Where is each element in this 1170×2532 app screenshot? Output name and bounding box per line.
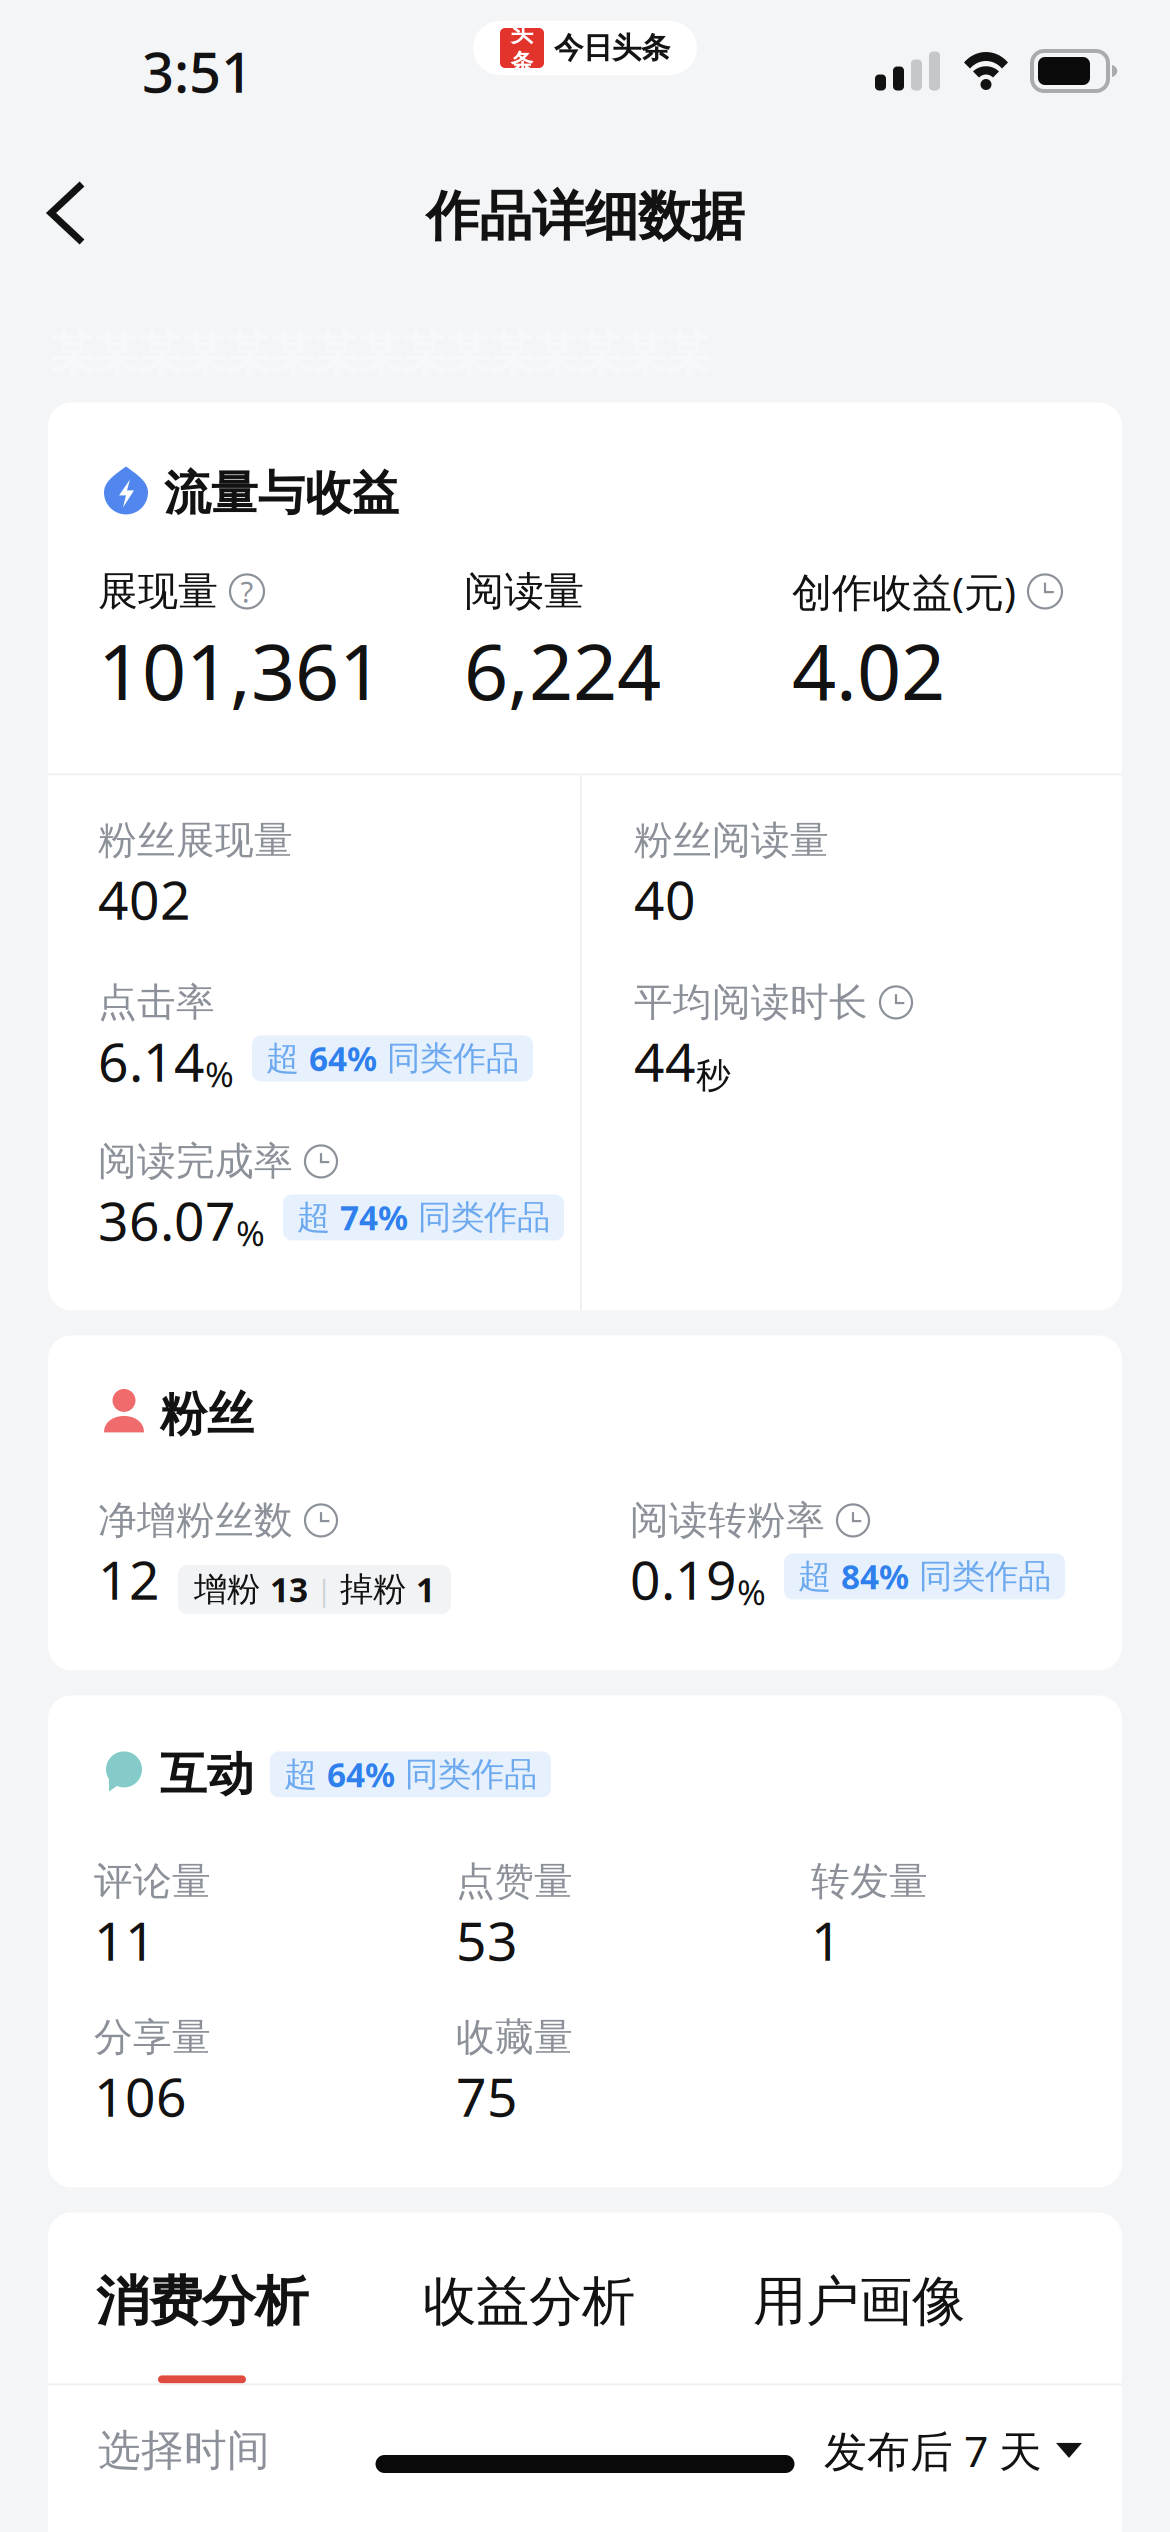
staticText: % xyxy=(236,1209,265,1256)
staticText: 阅读完成率 xyxy=(98,1137,293,1186)
staticText: 53 xyxy=(456,1904,518,1976)
staticText: 超 xyxy=(266,1037,309,1079)
staticText: 74% xyxy=(340,1195,408,1240)
staticText: 40 xyxy=(634,863,696,935)
staticText: 作品详细数据 xyxy=(426,183,744,250)
staticText: 64% xyxy=(327,1752,395,1797)
staticText: 4.02 xyxy=(792,617,945,723)
button[interactable]: 选择时间 xyxy=(48,2385,1122,2515)
staticText: 6.14 xyxy=(98,1025,205,1097)
staticText: 101,361 xyxy=(98,617,383,723)
staticText: 1 xyxy=(416,1567,435,1612)
staticText: 流量与收益 xyxy=(164,464,399,523)
button[interactable]: 收益分析 xyxy=(423,2273,635,2383)
button[interactable]: Back xyxy=(0,129,118,265)
staticText: 分享量 xyxy=(94,2013,211,2062)
staticText: 同类作品 xyxy=(408,1196,550,1238)
staticText: 收益分析 xyxy=(423,2268,635,2335)
staticText: % xyxy=(737,1568,766,1615)
staticText: 平均阅读时长 xyxy=(634,978,868,1027)
staticText: 同类作品 xyxy=(377,1037,519,1079)
staticText: 阅读量 xyxy=(464,566,584,617)
staticText: 粉丝阅读量 xyxy=(634,816,829,865)
staticText: 转发量 xyxy=(811,1857,928,1906)
staticText: 点击率 xyxy=(98,978,215,1027)
staticText: 402 xyxy=(98,863,191,935)
staticText: 收藏量 xyxy=(456,2013,573,2062)
staticText: 36.07 xyxy=(98,1184,236,1256)
staticText: 掉粉 xyxy=(340,1568,416,1610)
staticText: 今日头条 xyxy=(554,29,670,66)
staticText: 秒 xyxy=(696,1054,731,1097)
staticText: 评论量 xyxy=(94,1857,211,1906)
staticText: 3:51 xyxy=(142,33,253,109)
staticText: | xyxy=(308,1569,340,1609)
staticText: 13 xyxy=(270,1567,308,1612)
staticText: 11 xyxy=(94,1904,156,1976)
staticText: 超 xyxy=(798,1555,841,1597)
staticText: % xyxy=(205,1050,234,1097)
staticText: 用户画像 xyxy=(753,2268,965,2335)
staticText: 75 xyxy=(456,2060,518,2132)
staticText: 64% xyxy=(309,1036,377,1081)
staticText: 6,224 xyxy=(464,617,661,723)
staticText: 点赞量 xyxy=(456,1857,573,1906)
staticText: 展现量 xyxy=(98,566,218,617)
staticText: 选择时间 xyxy=(98,2424,270,2477)
staticText: 1 xyxy=(811,1904,842,1976)
staticText: 同类作品 xyxy=(909,1555,1051,1597)
staticText: 超 xyxy=(297,1196,340,1238)
button[interactable]: 消费分析 xyxy=(96,2273,308,2383)
staticText: 同类作品 xyxy=(395,1753,537,1795)
staticText: 106 xyxy=(94,2060,187,2132)
staticText: 净增粉丝数 xyxy=(98,1496,293,1545)
staticText: 创作收益(元) xyxy=(792,564,1016,619)
staticText: 超 xyxy=(284,1753,327,1795)
staticText: 0.19 xyxy=(630,1543,737,1615)
staticText: ? xyxy=(240,571,253,611)
button[interactable]: 用户画像 xyxy=(753,2273,965,2383)
staticText: 粉丝展现量 xyxy=(98,816,293,865)
staticText: 增粉 xyxy=(194,1568,270,1610)
staticText: 84% xyxy=(841,1554,909,1599)
staticText: 阅读转粉率 xyxy=(630,1496,825,1545)
staticText: 头条 xyxy=(510,19,533,76)
staticText: 44 xyxy=(634,1025,696,1097)
staticText: 互动 xyxy=(160,1745,254,1804)
staticText: 消费分析 xyxy=(96,2268,308,2335)
staticText: 12 xyxy=(98,1543,160,1615)
staticText: 发布后 7 天 xyxy=(824,2421,1042,2479)
staticText: 粉丝 xyxy=(160,1385,254,1444)
